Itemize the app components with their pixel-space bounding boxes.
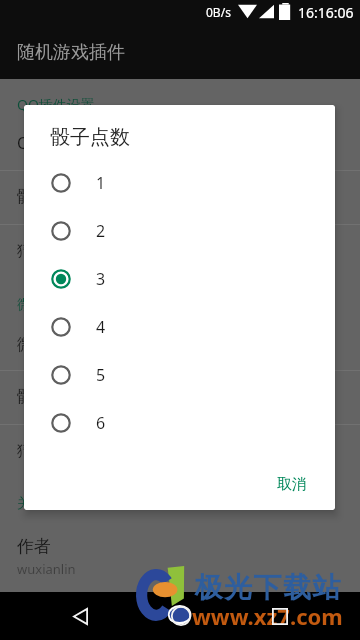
- button[interactable]: 4: [24, 303, 335, 351]
- staticText: 作者: [17, 536, 51, 557]
- button[interactable]: 3: [24, 255, 335, 303]
- staticText: 3: [96, 268, 106, 290]
- staticText: 5: [96, 364, 106, 386]
- staticText: 取消: [277, 475, 307, 494]
- staticText: QQ号: [17, 132, 58, 154]
- staticText: wuxianlin: [17, 560, 76, 578]
- staticText: 2: [96, 220, 106, 242]
- button[interactable]: Recent apps: [260, 596, 300, 636]
- staticText: 0B/s: [206, 4, 231, 20]
- button[interactable]: 2: [24, 207, 335, 255]
- staticText: www.xz7.com: [192, 601, 343, 631]
- button[interactable]: 取消: [267, 467, 317, 502]
- button[interactable]: 猜拳结果: [0, 224, 360, 278]
- button[interactable]: 1: [24, 159, 335, 207]
- staticText: 微信插件设置: [17, 296, 101, 314]
- staticText: 猜拳结果: [17, 241, 81, 261]
- staticText: 骰子点数: [50, 125, 130, 150]
- button[interactable]: 骰子点数: [0, 170, 360, 224]
- button[interactable]: 6: [24, 399, 335, 447]
- button[interactable]: 微信号: [0, 318, 360, 372]
- staticText: 骰子点数: [17, 387, 81, 407]
- staticText: 极光下载站: [194, 570, 341, 605]
- staticText: 骰子点数: [17, 187, 81, 207]
- button[interactable]: QQ号: [0, 116, 360, 170]
- staticText: 1: [96, 172, 106, 194]
- staticText: 猜拳结果: [17, 441, 81, 461]
- staticText: 16:16:06: [298, 3, 354, 22]
- staticText: 4: [96, 316, 106, 338]
- button[interactable]: 骰子点数: [0, 370, 360, 424]
- button[interactable]: Back: [60, 596, 100, 636]
- staticText: 6: [96, 412, 106, 434]
- button[interactable]: 猜拳结果: [0, 424, 360, 478]
- staticText: 关于: [17, 495, 45, 513]
- button[interactable]: 5: [24, 351, 335, 399]
- button[interactable]: Home: [161, 596, 201, 636]
- staticText: QQ插件设置: [17, 95, 95, 114]
- button[interactable]: 作者: [0, 528, 360, 586]
- staticText: 微信号: [17, 335, 65, 355]
- staticText: 随机游戏插件: [17, 41, 125, 64]
